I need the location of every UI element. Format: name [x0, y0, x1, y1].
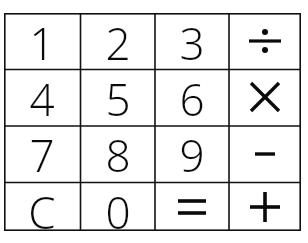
button[interactable]: Eight [80, 125, 155, 182]
button[interactable]: Plus [229, 182, 301, 231]
staticText: 6 [179, 69, 205, 125]
staticText: 4 [29, 69, 55, 125]
button[interactable]: Multiply [229, 69, 301, 125]
staticText: 9 [179, 125, 205, 182]
button[interactable]: Three [155, 13, 229, 69]
button[interactable]: Two [80, 13, 155, 69]
staticText: 8 [105, 125, 131, 182]
button[interactable]: Zero [80, 182, 155, 231]
staticText: 0 [105, 182, 131, 231]
button[interactable]: Minus [229, 125, 301, 182]
staticText: 7 [29, 125, 55, 182]
button[interactable]: Clear [4, 182, 80, 231]
button[interactable]: Divide [229, 13, 301, 69]
button[interactable]: Nine [155, 125, 229, 182]
button[interactable]: Equals [155, 182, 229, 231]
staticText: 3 [179, 13, 205, 69]
button[interactable]: Seven [4, 125, 80, 182]
staticText: 2 [105, 13, 131, 69]
staticText: 5 [105, 69, 131, 125]
button[interactable]: Six [155, 69, 229, 125]
button[interactable]: Four [4, 69, 80, 125]
staticText: C [28, 182, 56, 231]
button[interactable]: Five [80, 69, 155, 125]
button[interactable]: One [4, 13, 80, 69]
staticText: 1 [29, 13, 55, 69]
